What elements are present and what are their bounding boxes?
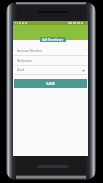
button[interactable]: Bank: [14, 66, 87, 75]
staticText: Account Number: [17, 49, 43, 53]
staticText: Add Beneficiary: [42, 38, 64, 42]
button[interactable]: Nickname: [14, 57, 87, 66]
staticText: Nickname: [17, 59, 33, 63]
staticText: Bank: [17, 68, 25, 72]
button[interactable]: Navigation menu: [12, 26, 20, 34]
button[interactable]: SAVE: [14, 79, 87, 88]
button[interactable]: Add Beneficiary: [40, 37, 66, 42]
staticText: SAVE: [46, 81, 56, 86]
button[interactable]: Account Number: [14, 47, 87, 56]
